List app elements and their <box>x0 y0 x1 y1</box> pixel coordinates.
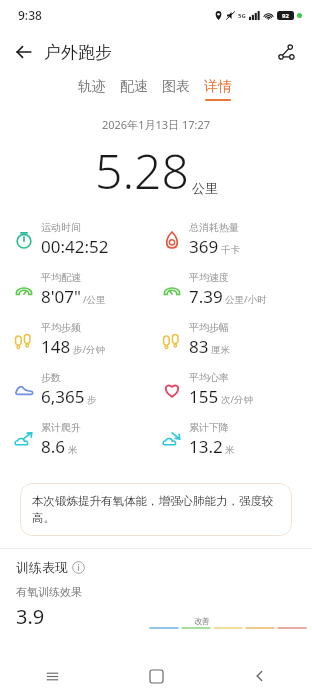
staticText: 148 <box>41 335 71 358</box>
staticText: 本次锻炼提升有氧体能，增强心肺能力，强度较高。 <box>32 494 280 525</box>
staticText: 92 <box>282 12 289 20</box>
staticText: 5G <box>238 12 246 20</box>
staticText: 平均速度 <box>189 271 229 284</box>
staticText: 累计下降 <box>189 421 229 434</box>
staticText: 9:38 <box>18 7 42 23</box>
button[interactable]: 配速 <box>120 74 148 105</box>
staticText: 步 <box>87 394 97 406</box>
staticText: 米 <box>225 444 235 456</box>
staticText: 图表 <box>162 78 190 96</box>
button[interactable]: 轨迹 <box>78 74 106 105</box>
staticText: 83 <box>189 335 209 358</box>
staticText: 千卡 <box>221 244 240 256</box>
staticText: 次/分钟 <box>221 393 254 406</box>
staticText: 轨迹 <box>78 78 106 96</box>
staticText: 厘米 <box>211 344 230 356</box>
staticText: 平均步幅 <box>189 321 229 334</box>
staticText: 平均配速 <box>41 271 81 284</box>
staticText: 平均步频 <box>41 321 81 334</box>
staticText: 改善 <box>194 616 210 626</box>
button[interactable]: 本次锻炼提升有氧体能，增强心肺能力，强度较高。 <box>20 483 292 536</box>
staticText: 155 <box>189 385 219 408</box>
staticText: 有氧训练效果 <box>16 585 82 599</box>
staticText: 8'07" <box>41 285 81 308</box>
button[interactable]: 详情 <box>204 74 232 105</box>
staticText: 平均心率 <box>189 371 229 384</box>
staticText: 5.28 <box>95 138 189 203</box>
staticText: 7.39 <box>189 285 223 308</box>
button[interactable]: Back <box>208 659 312 693</box>
button[interactable]: Share <box>268 34 304 70</box>
staticText: 369 <box>189 235 219 258</box>
staticText: 2026年1月13日 17:27 <box>0 117 312 132</box>
staticText: 公里 <box>192 180 218 196</box>
staticText: 配速 <box>120 78 148 96</box>
staticText: 总消耗热量 <box>189 221 239 234</box>
staticText: 步/分钟 <box>73 343 106 356</box>
staticText: 训练表现 <box>16 559 68 575</box>
staticText: 米 <box>68 444 78 456</box>
staticText: 6,365 <box>41 385 85 408</box>
button[interactable]: Home <box>104 659 208 693</box>
staticText: 13.2 <box>189 435 223 458</box>
staticText: 公里/小时 <box>225 293 267 306</box>
staticText: 00:42:52 <box>41 235 109 258</box>
button[interactable]: Info <box>72 561 85 574</box>
staticText: 累计爬升 <box>41 421 81 434</box>
button[interactable]: Back <box>6 34 42 70</box>
staticText: 详情 <box>204 78 232 96</box>
button[interactable]: Recents <box>0 659 104 693</box>
staticText: 运动时间 <box>41 221 81 234</box>
button[interactable]: 图表 <box>162 74 190 105</box>
staticText: 3.9 <box>16 603 45 630</box>
staticText: 8.6 <box>41 435 66 458</box>
staticText: 步数 <box>41 371 61 384</box>
staticText: /公里 <box>83 293 106 306</box>
staticText: 户外跑步 <box>44 42 112 63</box>
